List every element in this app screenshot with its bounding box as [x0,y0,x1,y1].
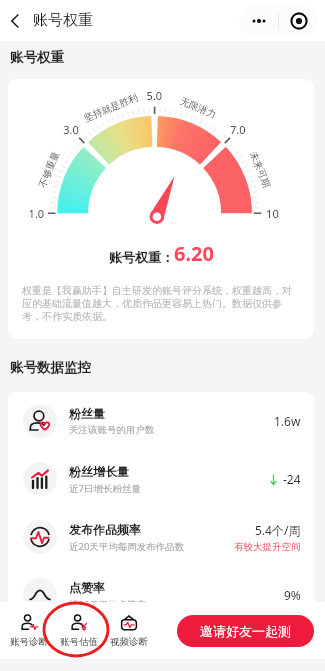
button[interactable]: 粉丝增长量 [8,450,314,508]
staticText: 账号估值 [60,636,98,648]
staticText: 权重是【我赢助手】自主研发的账号评分系统，权重越高，对应的基础流量值越大，优质作… [22,284,300,323]
staticText: 关注该账号的用户数 [69,424,155,436]
staticText: 视频诊断 [110,636,148,648]
button[interactable]: 视频诊断 [104,602,154,659]
staticText: 发布作品频率 [69,522,141,537]
staticText: 账号诊断 [10,636,48,648]
staticText: 邀请好友一起测 [200,623,291,639]
staticText: 账号权重 [33,11,93,30]
button[interactable]: Close [279,6,318,36]
staticText: 近30天平均点赞率 [69,598,147,611]
staticText: 有较大提升空间 [234,541,301,553]
staticText: 账号权重 [10,49,64,66]
button[interactable]: More [239,6,278,36]
staticText: 9% [284,587,301,603]
staticText: 5.4个/周 [255,522,301,538]
button[interactable]: 账号诊断 [4,602,54,659]
staticText: -24 [283,471,301,487]
staticText: 近7日增长粉丝量 [69,482,141,495]
staticText: 1.6w [274,413,301,429]
staticText: 点赞率 [69,580,105,595]
button[interactable]: 点赞率 [8,566,314,624]
staticText: 账号数据监控 [10,359,91,376]
button[interactable]: Back [0,6,30,36]
staticText: 6.20 [174,240,214,267]
staticText: 粉丝增长量 [69,464,129,479]
staticText: 近20天平均每周发布作品数 [69,540,185,553]
staticText: 账号权重： [109,249,174,265]
button[interactable]: 发布作品频率 [8,508,314,566]
button[interactable]: 邀请好友一起测 [177,615,314,647]
button[interactable]: 粉丝量 [8,392,314,450]
button[interactable]: 账号估值 [54,602,104,659]
staticText: 粉丝量 [69,406,105,421]
